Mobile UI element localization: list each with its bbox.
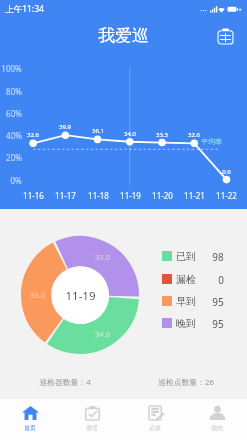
staticText: 管理 [86, 424, 98, 431]
staticText: 80% [6, 86, 22, 96]
staticText: 98 [212, 250, 224, 262]
button[interactable]: 管理 [62, 399, 122, 440]
staticText: 32.6 [188, 131, 200, 139]
staticText: 39.9 [59, 123, 71, 131]
staticText: 我爱巡 [98, 25, 149, 46]
button[interactable]: 已到 [162, 250, 224, 262]
staticText: 95 [212, 317, 224, 329]
staticText: 40% [6, 130, 22, 140]
staticText: 34.0 [95, 329, 110, 339]
button[interactable]: 漏检 [162, 273, 224, 285]
staticText: 11-22 [216, 190, 237, 200]
staticText: 60% [6, 108, 22, 118]
staticText: 32.6 [27, 131, 39, 139]
button[interactable]: 记录 [125, 399, 185, 440]
staticText: 漏检 [176, 273, 196, 285]
staticText: 95 [212, 295, 224, 307]
button[interactable]: 早到 [162, 295, 224, 307]
staticText: 33.0 [30, 290, 45, 300]
staticText: 已到 [176, 250, 196, 262]
staticText: 11-21 [184, 190, 205, 200]
staticText: 我的 [211, 424, 223, 431]
staticText: 11-16 [23, 190, 44, 200]
staticText: 晚到 [176, 317, 196, 329]
staticText: 巡检器数量：4 [39, 377, 91, 388]
staticText: 11-19 [120, 190, 141, 200]
staticText: 11-20 [152, 190, 173, 200]
staticText: 100% [1, 63, 22, 73]
button[interactable]: 首页 [0, 399, 60, 440]
staticText: 34.0 [124, 130, 136, 138]
staticText: 36.1 [92, 127, 104, 135]
staticText: 0% [10, 175, 22, 185]
staticText: 33.0 [95, 252, 110, 262]
staticText: 首页 [24, 424, 36, 431]
staticText: 11-18 [88, 190, 109, 200]
staticText: 平均率 [201, 137, 222, 146]
staticText: 20% [6, 152, 22, 162]
staticText: 33.3 [156, 131, 168, 139]
staticText: 记录 [149, 424, 161, 431]
button[interactable]: 我的 [187, 399, 247, 440]
button[interactable]: 晚到 [162, 317, 224, 329]
staticText: 巡检点数量：26 [158, 377, 214, 388]
staticText: 11-17 [55, 190, 76, 200]
staticText: 上午11:34 [5, 3, 44, 15]
staticText: 0 [218, 273, 224, 285]
button[interactable]: Report [212, 23, 238, 49]
staticText: 早到 [176, 295, 196, 307]
staticText: 0.0 [222, 168, 231, 176]
staticText: 11-19 [65, 288, 96, 304]
